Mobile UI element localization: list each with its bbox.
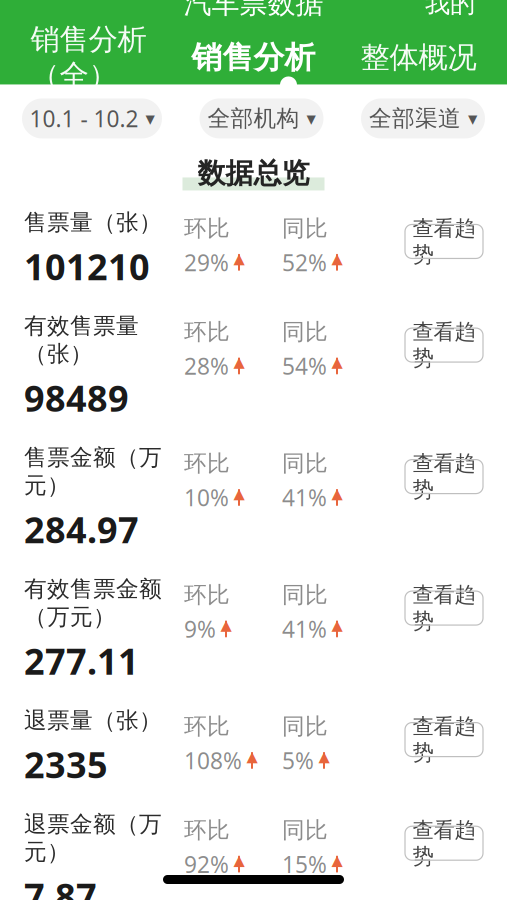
staticText: ▲ bbox=[233, 250, 244, 267]
staticText: 284.97 bbox=[24, 505, 139, 553]
staticText: ▲ bbox=[233, 354, 244, 370]
staticText: ▲ bbox=[318, 748, 329, 765]
staticText: 汽车票数据 bbox=[183, 0, 323, 21]
staticText: 5% bbox=[282, 745, 314, 775]
button[interactable]: 查看趋势 bbox=[405, 723, 483, 757]
staticText: 有效售票量（张） bbox=[24, 312, 139, 368]
staticText: 28% bbox=[184, 351, 229, 381]
staticText: ▲ bbox=[331, 617, 342, 633]
staticText: 277.11 bbox=[24, 637, 139, 685]
staticText: 41% bbox=[282, 482, 327, 512]
button[interactable]: 销售分析（全） bbox=[6, 11, 171, 103]
staticText: 环比 bbox=[184, 816, 230, 844]
staticText: ▲ bbox=[331, 485, 342, 502]
staticText: 查看趋势 bbox=[412, 450, 475, 503]
button[interactable]: 我的 bbox=[411, 0, 489, 27]
staticText: 数据总览 bbox=[197, 156, 309, 191]
staticText: 2335 bbox=[24, 740, 108, 788]
staticText: ▲ bbox=[233, 485, 244, 502]
staticText: 92% bbox=[184, 849, 229, 879]
staticText: ▾ bbox=[306, 108, 315, 129]
staticText: 查看趋势 bbox=[412, 713, 475, 766]
staticText: 退票量（张） bbox=[24, 707, 162, 734]
staticText: 同比 bbox=[282, 816, 328, 844]
staticText: 环比 bbox=[184, 713, 230, 740]
staticText: 全部渠道 bbox=[369, 104, 461, 132]
staticText: 查看趋势 bbox=[412, 582, 475, 634]
staticText: 售票金额（万元） bbox=[24, 444, 162, 499]
button[interactable]: 查看趋势 bbox=[405, 224, 483, 258]
staticText: 环比 bbox=[184, 214, 230, 242]
staticText: ▲ bbox=[331, 250, 342, 267]
staticText: ▲ bbox=[331, 852, 342, 868]
staticText: 52% bbox=[282, 247, 327, 277]
staticText: ▾ bbox=[468, 108, 477, 129]
staticText: 全部机构 bbox=[207, 104, 299, 132]
staticText: 108% bbox=[184, 745, 242, 775]
staticText: 101210 bbox=[24, 242, 150, 290]
staticText: 同比 bbox=[282, 214, 328, 242]
staticText: 15% bbox=[282, 849, 327, 879]
button[interactable]: 查看趋势 bbox=[405, 460, 483, 494]
staticText: 同比 bbox=[282, 450, 328, 477]
staticText: ▲ bbox=[233, 852, 244, 868]
staticText: 整体概况 bbox=[360, 39, 476, 75]
staticText: 41% bbox=[282, 614, 327, 644]
staticText: 7.87 bbox=[24, 872, 97, 900]
staticText: ▾ bbox=[145, 108, 154, 129]
staticText: 有效售票金额（万元） bbox=[24, 575, 162, 631]
button[interactable]: 全部渠道 bbox=[361, 98, 485, 138]
button[interactable]: 整体概况 bbox=[336, 29, 501, 85]
button[interactable]: 查看趋势 bbox=[405, 328, 483, 362]
staticText: 退票金额（万元） bbox=[24, 810, 162, 866]
staticText: 销售分析 bbox=[191, 39, 315, 76]
staticText: 同比 bbox=[282, 581, 328, 609]
staticText: 环比 bbox=[184, 318, 230, 346]
staticText: ▲ bbox=[220, 617, 231, 633]
staticText: 同比 bbox=[282, 318, 328, 346]
staticText: 查看趋势 bbox=[412, 215, 475, 268]
staticText: 售票量（张） bbox=[24, 208, 162, 236]
button[interactable]: 查看趋势 bbox=[405, 591, 483, 625]
button[interactable]: 查看趋势 bbox=[405, 826, 483, 860]
staticText: ▲ bbox=[331, 354, 342, 370]
staticText: 10% bbox=[184, 482, 229, 512]
button[interactable]: 10.1 - 10.2 bbox=[22, 98, 162, 138]
staticText: 销售分析（全） bbox=[30, 21, 146, 93]
staticText: 54% bbox=[282, 351, 327, 381]
staticText: 29% bbox=[184, 247, 229, 277]
staticText: 10.1 - 10.2 bbox=[29, 103, 138, 133]
staticText: 9% bbox=[184, 614, 216, 644]
staticText: 我的 bbox=[425, 0, 475, 19]
button[interactable]: 全部机构 bbox=[199, 98, 323, 138]
staticText: 同比 bbox=[282, 713, 328, 740]
staticText: 环比 bbox=[184, 450, 230, 477]
staticText: 查看趋势 bbox=[412, 319, 475, 371]
staticText: 98489 bbox=[24, 374, 129, 422]
button[interactable]: 销售分析 bbox=[171, 29, 336, 86]
staticText: ▲ bbox=[246, 748, 257, 765]
staticText: 环比 bbox=[184, 581, 230, 609]
staticText: 查看趋势 bbox=[412, 817, 475, 869]
